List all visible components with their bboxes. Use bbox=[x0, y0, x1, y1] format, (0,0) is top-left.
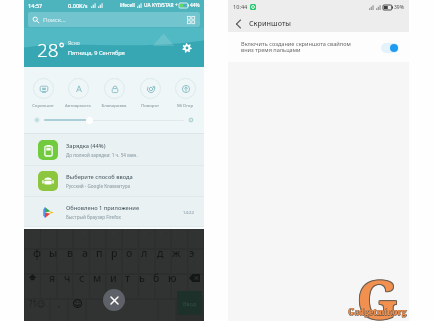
staticText: Поиск... bbox=[43, 16, 66, 24]
button[interactable]: Close keyboard bbox=[103, 289, 125, 311]
button[interactable]: Поиск... bbox=[28, 12, 200, 27]
staticText: 44% bbox=[190, 2, 200, 9]
staticText: Gadgetmir.org bbox=[348, 307, 407, 318]
staticText: Gadgetmir.org bbox=[348, 306, 407, 317]
staticText: Gadgetmir.org bbox=[348, 306, 407, 317]
staticText: Автояркость bbox=[61, 102, 95, 108]
staticText: 14:22 bbox=[183, 209, 194, 215]
staticText: ы bbox=[49, 246, 58, 260]
staticText: 0.00K/s bbox=[68, 2, 88, 10]
staticText: д bbox=[157, 246, 164, 260]
staticText: G bbox=[357, 262, 398, 321]
staticText: л bbox=[141, 246, 148, 260]
staticText: 14:57 bbox=[28, 2, 43, 10]
staticText: Включить создание скриншота свайпом вниз… bbox=[241, 40, 375, 54]
staticText: G bbox=[357, 263, 398, 321]
staticText: Пятница, 9 Сентября bbox=[68, 49, 125, 57]
button[interactable]: ?1☺ bbox=[24, 291, 50, 315]
staticText: о bbox=[126, 246, 133, 260]
staticText: G bbox=[358, 262, 399, 321]
staticText: а bbox=[82, 246, 88, 260]
staticText: ч bbox=[64, 271, 71, 285]
staticText: 28 bbox=[37, 37, 59, 63]
button[interactable]: Mi Drop bbox=[168, 78, 202, 108]
staticText: ж bbox=[172, 246, 181, 260]
staticText: Быстрый браузер Firefox bbox=[66, 214, 121, 220]
staticText: + bbox=[175, 2, 178, 9]
button[interactable]: Back bbox=[232, 17, 245, 30]
staticText: G bbox=[356, 261, 397, 321]
staticText: Gadgetmir.org bbox=[348, 306, 407, 317]
button[interactable]: Weather settings bbox=[180, 41, 194, 55]
button[interactable]: Зарядка (44%) bbox=[24, 134, 204, 165]
staticText: G bbox=[358, 263, 399, 321]
staticText: G bbox=[356, 263, 397, 321]
staticText: Выберите способ ввода bbox=[66, 173, 133, 181]
staticText: Gadgetmir.org bbox=[349, 306, 408, 317]
staticText: б bbox=[153, 271, 160, 285]
button[interactable]: Shortcuts bbox=[187, 16, 195, 24]
staticText: Зарядка (44%) bbox=[66, 142, 106, 150]
button[interactable]: Автояркость bbox=[61, 78, 95, 108]
staticText: м bbox=[93, 271, 102, 285]
button[interactable]: Скриншот bbox=[26, 78, 60, 108]
staticText: Скриншоты bbox=[249, 18, 291, 28]
button[interactable]: Emoji bbox=[68, 291, 86, 315]
button[interactable]: Обновлено 1 приложение bbox=[24, 197, 204, 226]
staticText: Mi Drop bbox=[168, 102, 202, 108]
button[interactable]: Ввод bbox=[177, 291, 202, 315]
button[interactable]: Включить создание скриншота свайпом вниз… bbox=[228, 32, 409, 62]
button[interactable]: Блокировка bbox=[97, 78, 131, 108]
staticText: и bbox=[110, 271, 117, 285]
staticText: Обновлено 1 приложение bbox=[66, 204, 140, 212]
staticText: ф bbox=[33, 246, 41, 260]
staticText: ?1☺ bbox=[29, 298, 46, 309]
staticText: ю bbox=[168, 271, 177, 285]
staticText: э bbox=[189, 246, 195, 260]
staticText: я bbox=[49, 271, 56, 285]
button[interactable]: Выберите способ ввода bbox=[24, 166, 204, 196]
staticText: lifecell bbox=[120, 2, 135, 9]
staticText: 39% bbox=[394, 4, 404, 11]
staticText: , bbox=[58, 297, 61, 309]
button[interactable] bbox=[381, 42, 399, 53]
staticText: G bbox=[357, 261, 398, 321]
staticText: в bbox=[67, 246, 74, 260]
staticText: До полной зарядки: 1 ч. 54 мин. bbox=[66, 152, 138, 158]
button[interactable]: Backspace bbox=[185, 267, 204, 288]
staticText: п bbox=[96, 246, 103, 260]
staticText: с bbox=[79, 271, 85, 285]
staticText: G bbox=[358, 261, 399, 321]
button[interactable]: Shift bbox=[24, 267, 41, 288]
staticText: Блокировка bbox=[97, 102, 131, 108]
staticText: G bbox=[356, 262, 397, 321]
staticText: Скриншот bbox=[26, 102, 60, 108]
staticText: Русский - Google Клавиатура bbox=[66, 183, 131, 189]
staticText: т bbox=[125, 271, 131, 285]
staticText: Поворот bbox=[133, 102, 167, 108]
staticText: ь bbox=[139, 271, 145, 285]
staticText: 10:44 bbox=[233, 3, 248, 11]
staticText: р bbox=[111, 246, 118, 260]
staticText: UA KYIVSTAR bbox=[144, 2, 174, 9]
button[interactable]: Поворот bbox=[133, 78, 167, 108]
staticText: Ясно bbox=[68, 40, 80, 47]
staticText: Ввод bbox=[183, 300, 197, 307]
